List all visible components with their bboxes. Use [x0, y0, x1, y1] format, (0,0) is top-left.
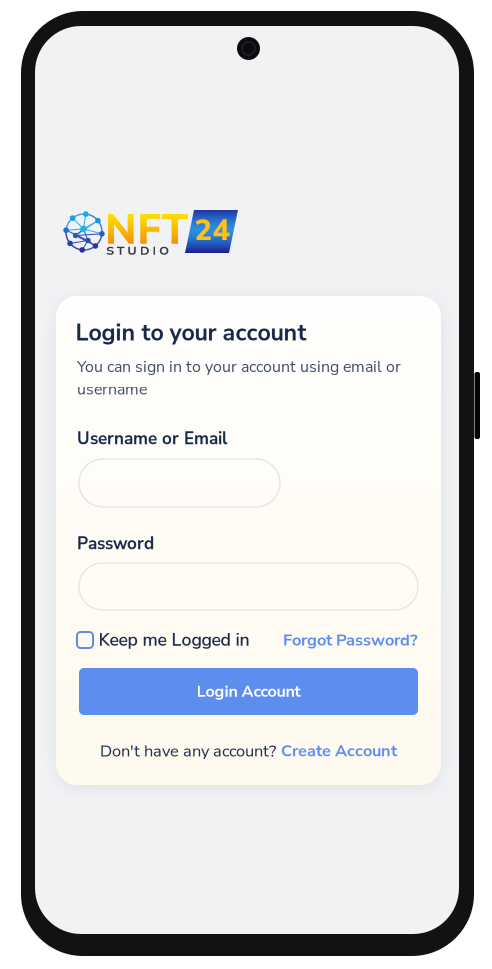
- staticText: Login to your account: [75, 317, 306, 349]
- staticText: I: [152, 242, 156, 259]
- staticText: username: [77, 378, 147, 400]
- staticText: S: [106, 242, 114, 259]
- staticText: Forgot Password?: [283, 629, 418, 651]
- staticText: Don't have any account?: [100, 740, 276, 762]
- staticText: 24: [194, 210, 230, 250]
- staticText: Username or Email: [77, 427, 227, 450]
- staticText: T: [117, 242, 125, 259]
- button[interactable]: Forgot Password?: [283, 629, 418, 651]
- staticText: Password: [77, 532, 154, 555]
- button[interactable]: Create Account: [281, 740, 397, 762]
- staticText: D: [140, 242, 150, 259]
- staticText: You can sign in to your account using em…: [77, 356, 401, 378]
- button[interactable]: Keep me Logged in: [77, 628, 277, 652]
- staticText: U: [127, 242, 137, 259]
- staticText: Login Account: [196, 680, 300, 702]
- staticText: O: [159, 242, 169, 259]
- staticText: Create Account: [281, 740, 397, 762]
- staticText: Keep me Logged in: [98, 628, 249, 652]
- button[interactable]: Login Account: [79, 668, 418, 715]
